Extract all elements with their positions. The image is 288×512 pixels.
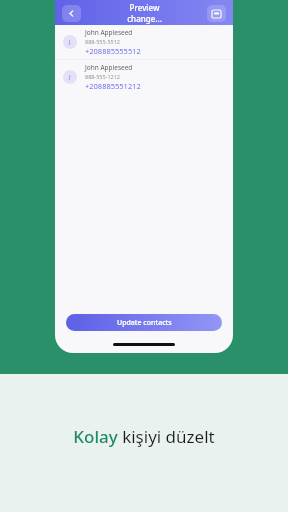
staticText: J <box>69 73 71 81</box>
staticText: Kolay kişiyi düzelt <box>73 425 215 448</box>
button[interactable]: J <box>55 25 233 59</box>
staticText: +208885555512 <box>85 46 141 56</box>
staticText: John Appleseed <box>85 63 133 72</box>
button[interactable]: Update contacts <box>66 314 222 331</box>
button[interactable]: Save contacts <box>207 5 226 22</box>
button[interactable]: Back <box>62 5 81 22</box>
staticText: John Appleseed <box>85 28 133 37</box>
button[interactable]: J <box>55 60 233 94</box>
staticText: J <box>69 38 71 46</box>
staticText: Update contacts <box>117 318 172 328</box>
staticText: 888-555-1212 <box>85 73 121 80</box>
staticText: 888-555-5512 <box>85 38 121 45</box>
staticText: +208885551212 <box>85 81 141 91</box>
staticText: Preview change... <box>127 2 162 24</box>
